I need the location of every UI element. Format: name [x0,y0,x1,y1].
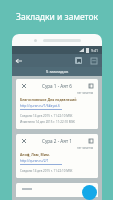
staticText: нет заметки [77,91,94,95]
button[interactable]: Удалить [20,137,27,144]
staticText: http://quran.ru/1/6#ayat-6 [20,104,60,108]
button[interactable]: Удалить [20,82,27,89]
staticText: Благословение Для подавлений [20,97,77,102]
button[interactable]: Закладки [72,54,85,67]
button[interactable]: Удалить [16,79,98,129]
staticText: 9:41 [91,48,99,53]
button[interactable]: Сохранить закладку [87,137,94,144]
button[interactable]: Сохранить закладку [87,82,94,89]
button[interactable]: Удалить [16,134,98,178]
staticText: Закладки и заметок [16,11,98,23]
button[interactable]: Добавить закладку [82,185,97,200]
staticText: 5 закладок [46,69,69,75]
button[interactable]: Назад [12,54,25,67]
button[interactable] [16,183,98,197]
staticText: Изменено 14 дек 2015 г. 11:22:10 MSK [20,120,75,124]
button[interactable]: 5 закладок [12,67,102,76]
staticText: Алиф, Лам, Мим. [20,152,50,157]
staticText: Сура 2 - Аят 1 [42,138,72,144]
button[interactable]: Заметки [87,54,100,67]
staticText: Создано 14 дек 2015 г. 11:22:10 MSK [20,114,73,118]
staticText: нет заметки [77,146,94,150]
staticText: Создано 14 дек 2015 г. 11:22:10 MSK [20,169,73,173]
staticText: Сура 1 - Аят 6 [42,83,72,89]
staticText: http://quran.ru/2/1 [20,159,49,163]
